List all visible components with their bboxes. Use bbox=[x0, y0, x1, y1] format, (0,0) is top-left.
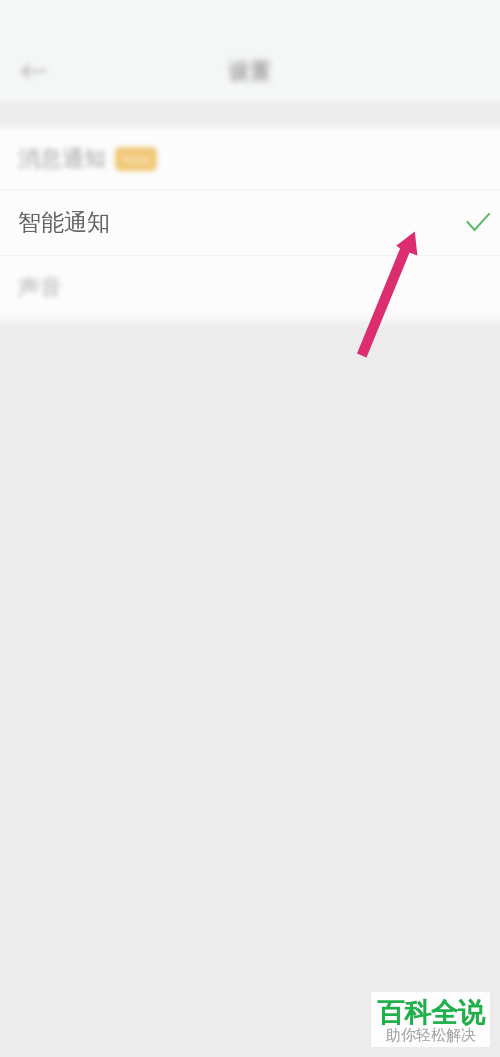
staticText: 智能通知 bbox=[18, 208, 110, 237]
button[interactable]: Back bbox=[10, 49, 54, 93]
staticText: 声音 bbox=[18, 274, 62, 302]
button[interactable]: Enabled bbox=[458, 203, 498, 243]
staticText: 百科全说 bbox=[377, 996, 485, 1030]
staticText: 设置 bbox=[229, 58, 271, 84]
staticText: 消息通知 bbox=[18, 145, 106, 173]
button[interactable]: 声音 bbox=[0, 256, 500, 320]
button[interactable]: 消息通知 bbox=[0, 128, 500, 189]
staticText: New bbox=[122, 150, 150, 168]
staticText: 助你轻松解决 bbox=[386, 1026, 476, 1045]
button[interactable]: 智能通知 bbox=[0, 190, 500, 255]
